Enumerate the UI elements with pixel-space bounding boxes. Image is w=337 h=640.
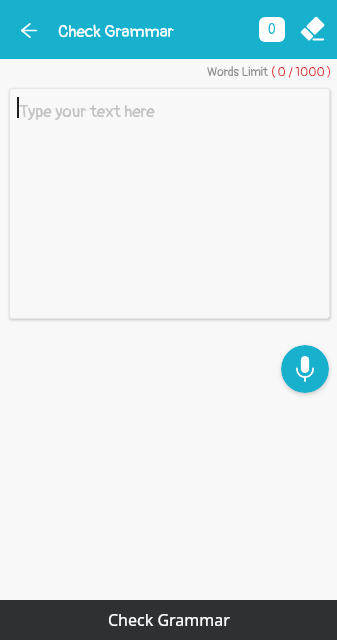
- staticText: Check Grammar: [58, 21, 174, 42]
- button[interactable]: Back: [9, 10, 49, 50]
- staticText: Check Grammar: [108, 609, 230, 631]
- button[interactable]: Voice input: [281, 345, 329, 393]
- staticText: 0: [268, 22, 276, 38]
- button[interactable]: Type your text here: [9, 88, 330, 319]
- button[interactable]: Check Grammar: [0, 600, 337, 640]
- staticText: ( 0 / 1000 ): [271, 65, 332, 80]
- button[interactable]: Clear text: [298, 15, 328, 45]
- staticText: Words Limit: [207, 65, 271, 80]
- button[interactable]: 0: [259, 17, 285, 42]
- staticText: Type your text here: [19, 101, 155, 122]
